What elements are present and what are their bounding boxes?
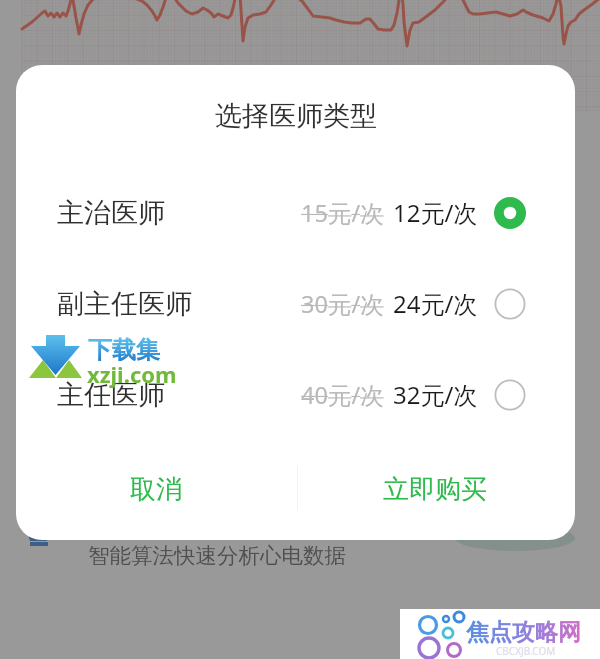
staticText: 焦点攻略网 [466, 618, 581, 647]
staticText: 选择医师类型 [215, 99, 377, 133]
staticText: 主治医师 [57, 196, 165, 230]
staticText: 24元/次 [393, 287, 478, 320]
staticText: 取消 [130, 473, 182, 506]
button[interactable]: 副主任医师 [16, 258, 575, 349]
staticText: 30元/次 [301, 288, 384, 320]
staticText: 智能算法快速分析心电数据 [88, 542, 346, 569]
button[interactable]: 主治医师 [16, 167, 575, 258]
staticText: 立即购买 [383, 473, 487, 506]
staticText: CBCXJB.COM [496, 644, 556, 658]
other: Select [494, 379, 526, 411]
staticText: 40元/次 [301, 379, 384, 411]
button[interactable]: 主任医师 [16, 349, 575, 440]
staticText: xzji.com [87, 359, 177, 389]
staticText: 15元/次 [301, 197, 384, 229]
other: Selected [494, 197, 526, 229]
other: Select [494, 288, 526, 320]
staticText: 32元/次 [393, 378, 478, 411]
staticText: 副主任医师 [57, 287, 192, 321]
button[interactable]: 立即购买 [295, 440, 575, 538]
staticText: 下载集 [88, 335, 160, 365]
staticText: 12元/次 [393, 196, 478, 229]
button[interactable]: 取消 [16, 440, 295, 538]
staticText: 主任医师 [57, 378, 165, 412]
